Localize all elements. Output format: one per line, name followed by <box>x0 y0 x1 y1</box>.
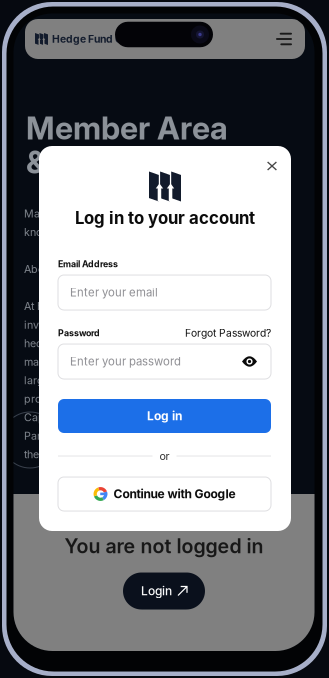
staticText: Partnerships are built on discretion, de… <box>24 429 232 442</box>
staticText: Password <box>58 328 100 338</box>
button[interactable]: Close <box>260 154 284 178</box>
staticText: or <box>159 449 169 462</box>
button[interactable]: Continue with Google <box>58 477 271 511</box>
staticText: investors with institutional opportuniti… <box>24 318 226 331</box>
staticText: Hedge Fund Cl <box>48 33 126 45</box>
button[interactable]: Log in <box>58 399 271 433</box>
button[interactable]: Menu <box>269 26 299 52</box>
staticText: know. It's about who you trust with it. <box>24 226 208 239</box>
staticText: the private markets. <box>24 448 123 461</box>
staticText: Login <box>141 584 172 598</box>
staticText: Continue with Google <box>113 487 235 501</box>
staticText: Capital introductions across the world. <box>24 411 219 424</box>
button[interactable]: Show password <box>240 355 259 368</box>
staticText: market access usually reserved for the <box>24 355 219 368</box>
staticText: Forgot Password? <box>185 327 271 339</box>
staticText: Enter your password <box>70 355 181 368</box>
staticText: providing a trusted network and direct <box>24 392 218 405</box>
button[interactable]: Login <box>123 572 205 609</box>
staticText: Member Area <box>26 109 228 147</box>
staticText: hedge funds, private equity deals, and <box>24 337 220 350</box>
staticText: largest allocators. Over the last decade… <box>24 374 224 387</box>
staticText: Managing wealth isn't just about what yo… <box>24 207 235 220</box>
staticText: Enter your email <box>70 286 158 299</box>
button[interactable]: Forgot Password? <box>185 327 271 339</box>
staticText: At Hedge Fund Club, we connect private <box>24 300 227 313</box>
staticText: About Hedge Fund Club <box>24 263 145 276</box>
staticText: Email Address <box>58 259 118 269</box>
staticText: You are not logged in <box>64 534 263 558</box>
staticText: Log in to your account <box>75 208 255 228</box>
staticText: & <box>26 143 47 181</box>
staticText: Log in <box>147 409 182 423</box>
